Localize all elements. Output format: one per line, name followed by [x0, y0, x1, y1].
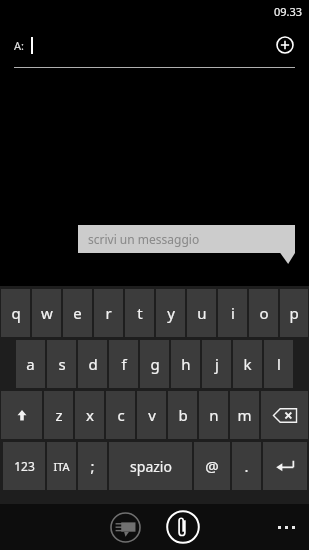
button[interactable]: Attach [164, 508, 202, 546]
button[interactable]: 123 [3, 442, 45, 490]
staticText: u [197, 303, 207, 323]
staticText: k [243, 354, 252, 374]
staticText: g [150, 354, 160, 374]
button[interactable]: spazio [109, 442, 192, 490]
button[interactable]: h [171, 340, 200, 388]
button[interactable]: t [125, 289, 154, 337]
button[interactable]: . [232, 442, 261, 490]
staticText: w [41, 303, 53, 323]
button[interactable]: More options [271, 512, 301, 542]
staticText: q [11, 303, 21, 323]
staticText: b [178, 405, 188, 425]
button[interactable]: Backspace [261, 391, 308, 439]
staticText: f [121, 354, 127, 374]
button[interactable]: e [63, 289, 92, 337]
staticText: ; [90, 456, 95, 476]
button[interactable]: d [78, 340, 107, 388]
staticText: v [148, 405, 156, 425]
button[interactable]: p [280, 289, 308, 337]
staticText: r [105, 303, 112, 323]
button[interactable]: @ [194, 442, 230, 490]
staticText: x [86, 405, 94, 425]
staticText: 09.33 [274, 4, 303, 19]
button[interactable]: f [109, 340, 138, 388]
staticText: s [58, 354, 66, 374]
staticText: i [231, 303, 235, 323]
button[interactable]: n [199, 391, 228, 439]
staticText: o [259, 303, 269, 323]
button[interactable]: x [75, 391, 104, 439]
button[interactable]: r [94, 289, 123, 337]
button[interactable]: l [264, 340, 293, 388]
button[interactable]: Enter [263, 442, 307, 490]
button[interactable]: a [16, 340, 45, 388]
button[interactable]: ITA [47, 442, 76, 490]
button[interactable]: y [156, 289, 185, 337]
staticText: spazio [130, 457, 172, 476]
button[interactable]: g [140, 340, 169, 388]
staticText: . [244, 456, 249, 476]
button[interactable]: q [1, 289, 30, 337]
button[interactable]: o [249, 289, 278, 337]
staticText: 123 [14, 458, 35, 474]
staticText: j [215, 354, 219, 374]
staticText: t [137, 303, 143, 323]
staticText: p [289, 303, 299, 323]
button[interactable]: Send message [108, 510, 142, 544]
button[interactable]: s [47, 340, 76, 388]
button[interactable]: c [106, 391, 135, 439]
staticText: a [26, 354, 35, 374]
button[interactable]: k [233, 340, 262, 388]
button[interactable]: z [44, 391, 73, 439]
staticText: @ [205, 456, 219, 476]
staticText: n [209, 405, 219, 425]
staticText: h [181, 354, 191, 374]
staticText: y [167, 303, 175, 323]
button[interactable]: u [187, 289, 216, 337]
button[interactable]: v [137, 391, 166, 439]
button[interactable]: Add recipient [271, 31, 299, 59]
button[interactable]: j [202, 340, 231, 388]
button[interactable]: Shift [1, 391, 42, 439]
staticText: l [277, 354, 281, 374]
button[interactable]: scrivi un messaggio [78, 225, 295, 253]
staticText: z [55, 405, 63, 425]
button[interactable]: ; [78, 442, 107, 490]
staticText: d [88, 354, 98, 374]
button[interactable]: i [218, 289, 247, 337]
staticText: ITA [53, 459, 70, 474]
staticText: scrivi un messaggio [88, 231, 200, 247]
button[interactable]: b [168, 391, 197, 439]
staticText: A: [14, 38, 24, 53]
staticText: c [117, 405, 125, 425]
staticText: m [237, 405, 252, 425]
button[interactable]: m [230, 391, 259, 439]
staticText: e [73, 303, 82, 323]
button[interactable]: w [32, 289, 61, 337]
